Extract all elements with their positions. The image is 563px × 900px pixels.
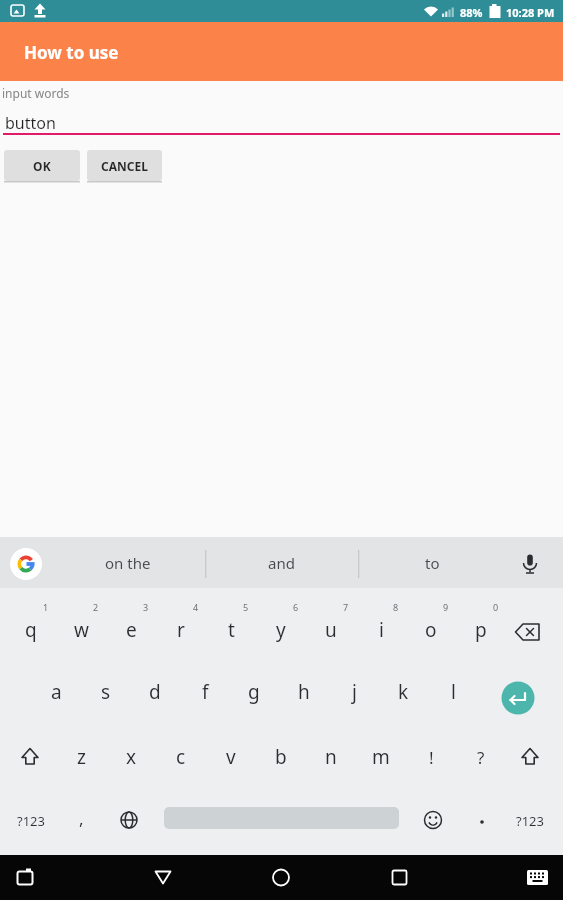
staticText: n xyxy=(325,744,337,770)
button[interactable]: t xyxy=(207,604,255,656)
staticText: b xyxy=(275,744,287,770)
staticText: 4 xyxy=(193,601,199,613)
staticText: f xyxy=(202,679,209,705)
button[interactable]: ?123 xyxy=(8,810,54,832)
button[interactable]: on the xyxy=(68,540,188,585)
button[interactable]: ? xyxy=(457,731,505,783)
button[interactable]: q xyxy=(7,604,55,656)
button[interactable]: o xyxy=(407,604,455,656)
staticText: OK xyxy=(33,158,51,174)
staticText: m xyxy=(372,744,390,770)
button[interactable]: v xyxy=(207,731,255,783)
staticText: to xyxy=(425,553,440,573)
staticText: 3 xyxy=(143,601,149,613)
button[interactable]: m xyxy=(357,731,405,783)
button[interactable]: w xyxy=(57,604,105,656)
staticText: j xyxy=(352,679,357,705)
button[interactable]: , xyxy=(57,792,105,844)
staticText: q xyxy=(25,617,37,643)
button[interactable]: z xyxy=(57,731,105,783)
button[interactable]: to xyxy=(372,540,492,585)
staticText: , xyxy=(79,807,84,830)
staticText: r xyxy=(177,617,185,643)
button[interactable] xyxy=(506,608,554,652)
button[interactable]: OK xyxy=(4,150,80,181)
staticText: 88% xyxy=(460,5,483,20)
button[interactable]: f xyxy=(181,666,229,718)
staticText: o xyxy=(425,617,437,643)
staticText: 0 xyxy=(493,601,499,613)
button[interactable] xyxy=(514,548,546,580)
staticText: and xyxy=(268,553,295,573)
button[interactable] xyxy=(506,735,554,779)
button[interactable]: a xyxy=(32,666,80,718)
staticText: s xyxy=(101,679,111,705)
staticText: h xyxy=(298,679,310,705)
staticText: 5 xyxy=(243,601,249,613)
staticText: 2 xyxy=(93,601,99,613)
button[interactable]: i xyxy=(357,604,405,656)
staticText: button xyxy=(5,112,56,134)
button[interactable]: c xyxy=(157,731,205,783)
staticText: c xyxy=(176,744,186,770)
button[interactable] xyxy=(409,798,457,842)
staticText: 9 xyxy=(443,601,449,613)
button[interactable]: j xyxy=(330,666,378,718)
staticText: z xyxy=(77,744,86,770)
staticText: a xyxy=(51,679,62,705)
button[interactable]: e xyxy=(107,604,155,656)
staticText: How to use xyxy=(24,41,119,64)
staticText: w xyxy=(74,617,89,643)
button[interactable] xyxy=(8,862,42,894)
staticText: 10:28 PM xyxy=(506,5,555,20)
staticText: on the xyxy=(105,553,151,573)
button[interactable]: r xyxy=(157,604,205,656)
button[interactable]: CANCEL xyxy=(87,150,162,181)
button[interactable]: ?123 xyxy=(507,810,553,832)
staticText: x xyxy=(126,744,137,770)
staticText: e xyxy=(126,617,137,643)
staticText: g xyxy=(248,679,260,705)
button[interactable]: x xyxy=(107,731,155,783)
staticText: k xyxy=(398,679,409,705)
staticText: ?123 xyxy=(17,812,45,830)
button[interactable]: and xyxy=(221,540,341,585)
button[interactable] xyxy=(146,862,180,894)
staticText: v xyxy=(226,744,236,770)
button[interactable]: u xyxy=(307,604,355,656)
button[interactable]: p xyxy=(457,604,505,656)
staticText: t xyxy=(228,617,235,643)
button[interactable]: k xyxy=(379,666,427,718)
button[interactable]: b xyxy=(257,731,305,783)
staticText: p xyxy=(475,617,487,643)
button[interactable] xyxy=(382,862,416,894)
button[interactable] xyxy=(494,674,542,722)
staticText: ? xyxy=(477,746,485,769)
staticText: 1 xyxy=(43,601,49,613)
button[interactable]: ! xyxy=(407,731,455,783)
button[interactable]: h xyxy=(280,666,328,718)
button[interactable]: y xyxy=(257,604,305,656)
staticText: ! xyxy=(429,746,434,769)
staticText: CANCEL xyxy=(101,158,148,174)
staticText: y xyxy=(276,617,286,643)
button[interactable] xyxy=(105,798,153,842)
button[interactable] xyxy=(520,862,554,894)
staticText: 7 xyxy=(343,601,349,613)
staticText: 8 xyxy=(393,601,399,613)
button[interactable]: d xyxy=(131,666,179,718)
button[interactable]: n xyxy=(307,731,355,783)
button[interactable]: l xyxy=(429,666,477,718)
button[interactable] xyxy=(10,548,42,580)
staticText: l xyxy=(451,679,456,705)
staticText: ?123 xyxy=(516,812,544,830)
button[interactable]: g xyxy=(230,666,278,718)
button[interactable] xyxy=(264,862,298,894)
button[interactable] xyxy=(6,735,54,779)
staticText: 6 xyxy=(293,601,299,613)
staticText: d xyxy=(149,679,161,705)
staticText: u xyxy=(325,617,337,643)
button[interactable]: s xyxy=(82,666,130,718)
staticText: i xyxy=(379,617,384,643)
